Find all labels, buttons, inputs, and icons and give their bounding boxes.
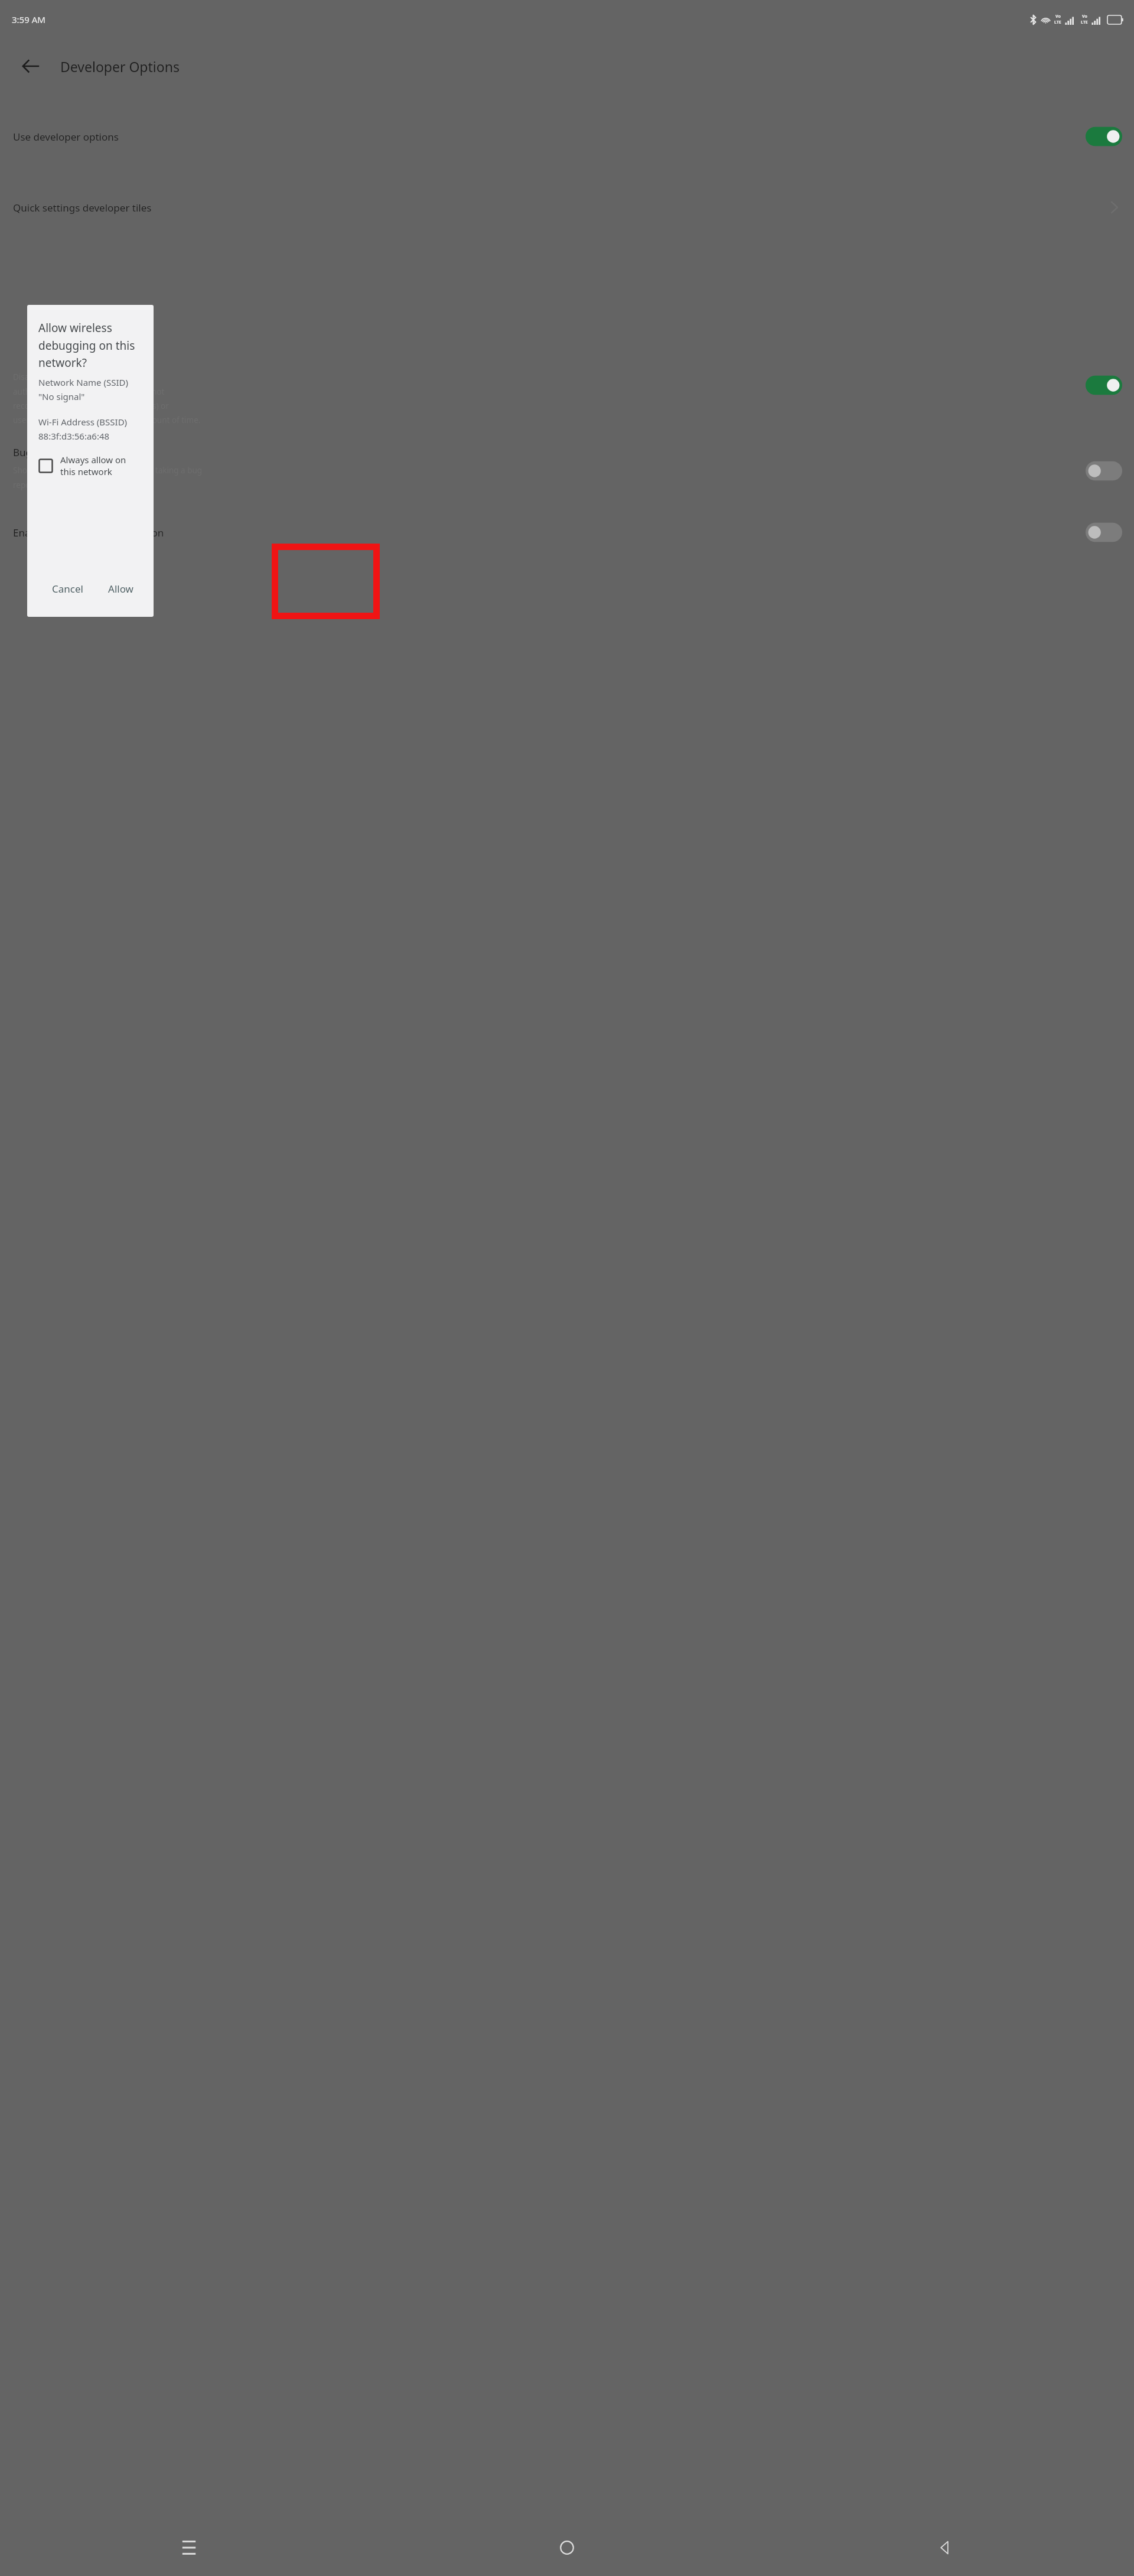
staticText: LTE (1081, 19, 1088, 25)
staticText: Vo (1082, 14, 1087, 19)
staticText: 3:59 AM (12, 14, 45, 25)
staticText: Developer Options (60, 57, 180, 76)
staticText: Use developer options (13, 130, 1086, 144)
staticText: Wi-Fi Address (BSSID) 88:3f:d3:56:a6:48 (38, 416, 128, 442)
button[interactable]: On (1086, 126, 1122, 147)
button[interactable]: Back (756, 2519, 1134, 2576)
staticText: Bug report shortcut (13, 445, 106, 459)
button[interactable]: On (1086, 375, 1122, 395)
button[interactable]: Cancel (44, 576, 92, 601)
button[interactable]: Quick settings developer tiles (0, 184, 1134, 230)
staticText: Allow wireless debugging on this network… (38, 320, 144, 370)
button[interactable]: Disable automatic revocation of adb auth… (0, 368, 1134, 429)
staticText: Network Name (SSID) "No signal" (38, 376, 128, 402)
button[interactable]: Off (1086, 461, 1122, 481)
button[interactable]: Always allow on this network (38, 453, 144, 479)
button[interactable]: Use developer options (0, 113, 1134, 160)
staticText: Show a button in the power menu for taki… (13, 465, 203, 490)
staticText: Enable view attribute inspection (13, 526, 1086, 539)
staticText: Vo (1055, 14, 1061, 19)
staticText: Always allow on this network (60, 454, 141, 477)
staticText: Allow (108, 582, 133, 596)
staticText: Quick settings developer tiles (13, 201, 1110, 214)
staticText: Cancel (52, 582, 83, 596)
button[interactable]: Back (15, 51, 46, 82)
button[interactable]: Bug report shortcut (0, 442, 1134, 494)
button[interactable]: Enable view attribute inspection (0, 509, 1134, 555)
button[interactable]: Allow (100, 576, 142, 601)
button[interactable]: Recent apps (0, 2519, 378, 2576)
staticText: Disable automatic revocation of adb auth… (13, 372, 201, 425)
staticText: LTE (1054, 19, 1061, 25)
button[interactable]: Off (1086, 522, 1122, 542)
button[interactable]: Home (378, 2519, 756, 2576)
